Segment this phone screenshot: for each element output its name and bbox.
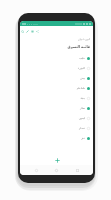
staticText: قائمة التسوق	[20, 44, 90, 49]
button[interactable]: سكر	[20, 103, 90, 113]
staticText: طماطم	[76, 87, 85, 90]
staticText: بيض	[80, 77, 85, 80]
staticText: خضار	[79, 127, 85, 130]
button[interactable]: خضار	[20, 123, 90, 133]
button[interactable]: Delete	[30, 29, 35, 34]
button[interactable]: Search	[20, 29, 25, 34]
button[interactable]: Edit	[25, 29, 30, 34]
button[interactable]: Share	[35, 29, 40, 34]
staticText: اليوم، ٨ مهام	[20, 38, 90, 41]
button[interactable]: Recents	[73, 166, 82, 175]
button[interactable]: خبز	[20, 133, 90, 143]
staticText: جبنة	[80, 97, 85, 100]
button[interactable]: جبنة	[20, 93, 90, 103]
button[interactable]: حليب	[20, 53, 90, 63]
staticText: الجزرة	[77, 67, 85, 70]
button[interactable]: Add item	[53, 156, 61, 164]
staticText: ليمون	[78, 117, 85, 120]
button[interactable]: ليمون	[20, 113, 90, 123]
button[interactable]: بيض	[20, 73, 90, 83]
button[interactable]: Back	[32, 166, 41, 175]
staticText: سكر	[79, 107, 85, 110]
staticText: خبز	[81, 137, 85, 140]
button[interactable]: طماطم	[20, 83, 90, 93]
button[interactable]: الجزرة	[20, 63, 90, 73]
staticText: حليب	[79, 57, 85, 60]
button[interactable]: Home	[52, 166, 61, 175]
